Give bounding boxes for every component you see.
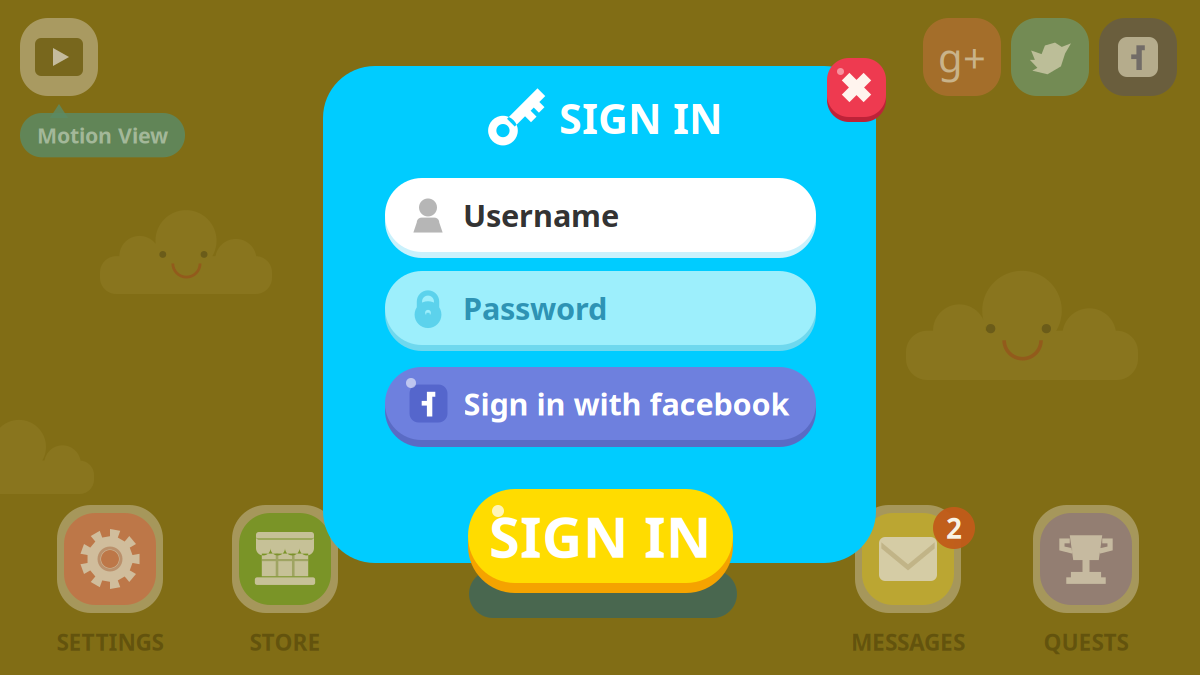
button[interactable]: Sign in with Twitter bbox=[1011, 18, 1089, 96]
button[interactable]: SIGN IN bbox=[468, 489, 733, 593]
button[interactable]: Password bbox=[385, 271, 816, 351]
button[interactable]: Sign in with Google Plus bbox=[923, 18, 1001, 96]
button[interactable]: Sign in with Facebook bbox=[1099, 18, 1177, 96]
staticText: QUESTS bbox=[1043, 627, 1128, 657]
button[interactable]: QUESTS bbox=[1001, 505, 1171, 657]
button[interactable]: Username bbox=[385, 178, 816, 258]
button[interactable]: Close bbox=[827, 58, 886, 122]
staticText: 2 bbox=[946, 509, 962, 547]
staticText: MESSAGES bbox=[851, 627, 965, 657]
staticText: STORE bbox=[249, 627, 320, 657]
staticText: Password bbox=[463, 288, 607, 328]
staticText: SIGN IN bbox=[559, 91, 723, 145]
button[interactable]: Motion View bbox=[20, 18, 98, 96]
staticText: SETTINGS bbox=[56, 627, 163, 657]
staticText: Username bbox=[463, 195, 619, 235]
button[interactable]: STORE bbox=[200, 505, 370, 657]
staticText: Sign in with facebook bbox=[463, 383, 789, 424]
staticText: g+ bbox=[938, 30, 986, 83]
button[interactable]: SETTINGS bbox=[25, 505, 195, 657]
staticText: SIGN IN bbox=[489, 499, 712, 573]
button[interactable]: MESSAGES bbox=[823, 505, 993, 657]
button[interactable]: Sign in with facebook bbox=[385, 367, 816, 447]
staticText: Motion View bbox=[37, 121, 168, 149]
